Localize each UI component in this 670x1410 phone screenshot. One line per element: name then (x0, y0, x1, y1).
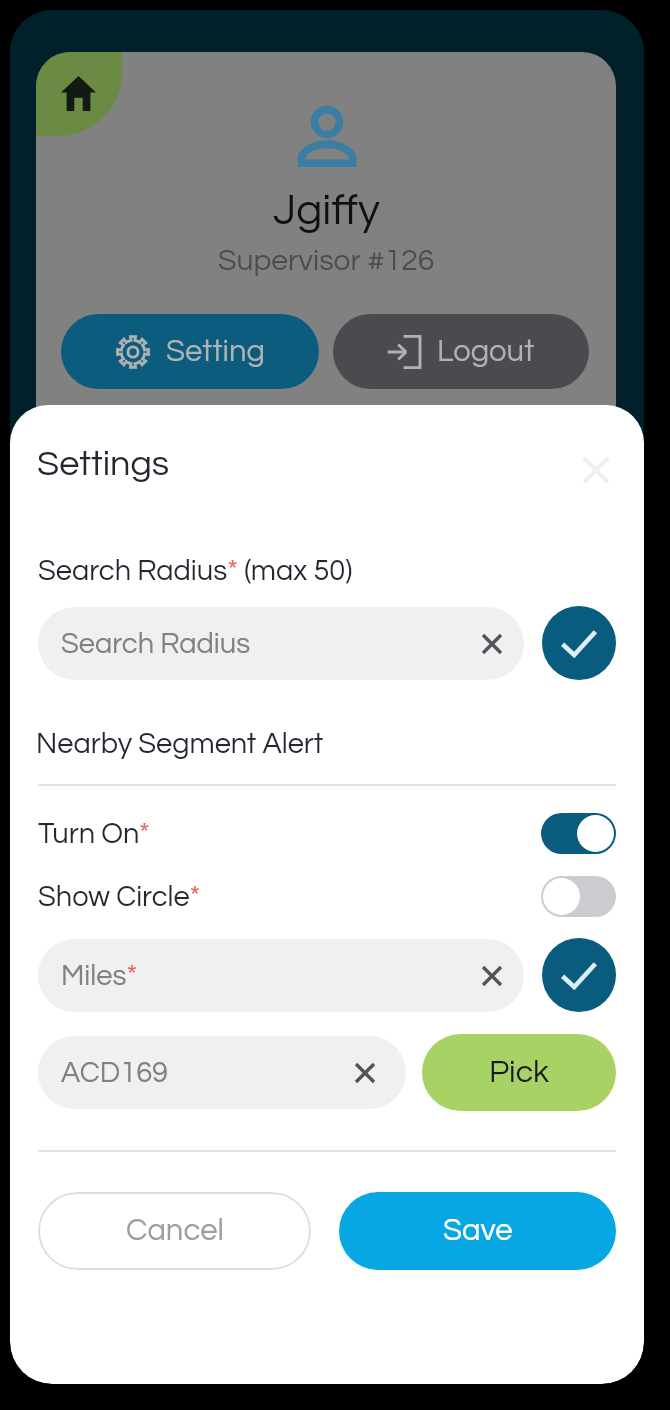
staticText: Logout (437, 336, 535, 368)
staticText: Search Radius* (max 50) (38, 556, 353, 586)
button[interactable]: Setting (61, 314, 319, 389)
staticText: Setting (166, 336, 265, 368)
button[interactable]: Close (572, 446, 620, 494)
button[interactable]: Search Radius (38, 607, 524, 680)
staticText: Cancel (126, 1215, 224, 1247)
button[interactable]: Save (339, 1192, 616, 1270)
staticText: Settings (37, 445, 170, 482)
staticText: ACD169 (61, 1058, 169, 1088)
staticText: Miles* (61, 961, 138, 991)
button[interactable]: Clear (345, 1053, 385, 1093)
button[interactable]: Confirm (542, 606, 616, 680)
staticText: Show Circle* (38, 882, 201, 912)
button[interactable]: Logout (333, 314, 589, 389)
button[interactable]: Home (36, 52, 122, 136)
button[interactable]: Clear (472, 956, 512, 996)
staticText: Supervisor #126 (218, 245, 435, 276)
button[interactable]: Pick (422, 1034, 616, 1111)
staticText: Pick (489, 1056, 550, 1089)
button[interactable]: Toggle off (541, 876, 616, 917)
button[interactable]: Miles* (38, 939, 524, 1012)
button[interactable]: Toggle on (541, 813, 616, 854)
button[interactable]: Clear (472, 624, 512, 664)
staticText: Turn On* (38, 819, 150, 849)
button[interactable]: Cancel (38, 1192, 311, 1270)
staticText: Nearby Segment Alert (36, 729, 324, 759)
staticText: Save (443, 1215, 513, 1247)
button[interactable]: ACD169 (38, 1036, 406, 1109)
staticText: Jgiffy (273, 188, 380, 233)
staticText: Search Radius (61, 629, 251, 659)
button[interactable]: Confirm (542, 938, 616, 1012)
